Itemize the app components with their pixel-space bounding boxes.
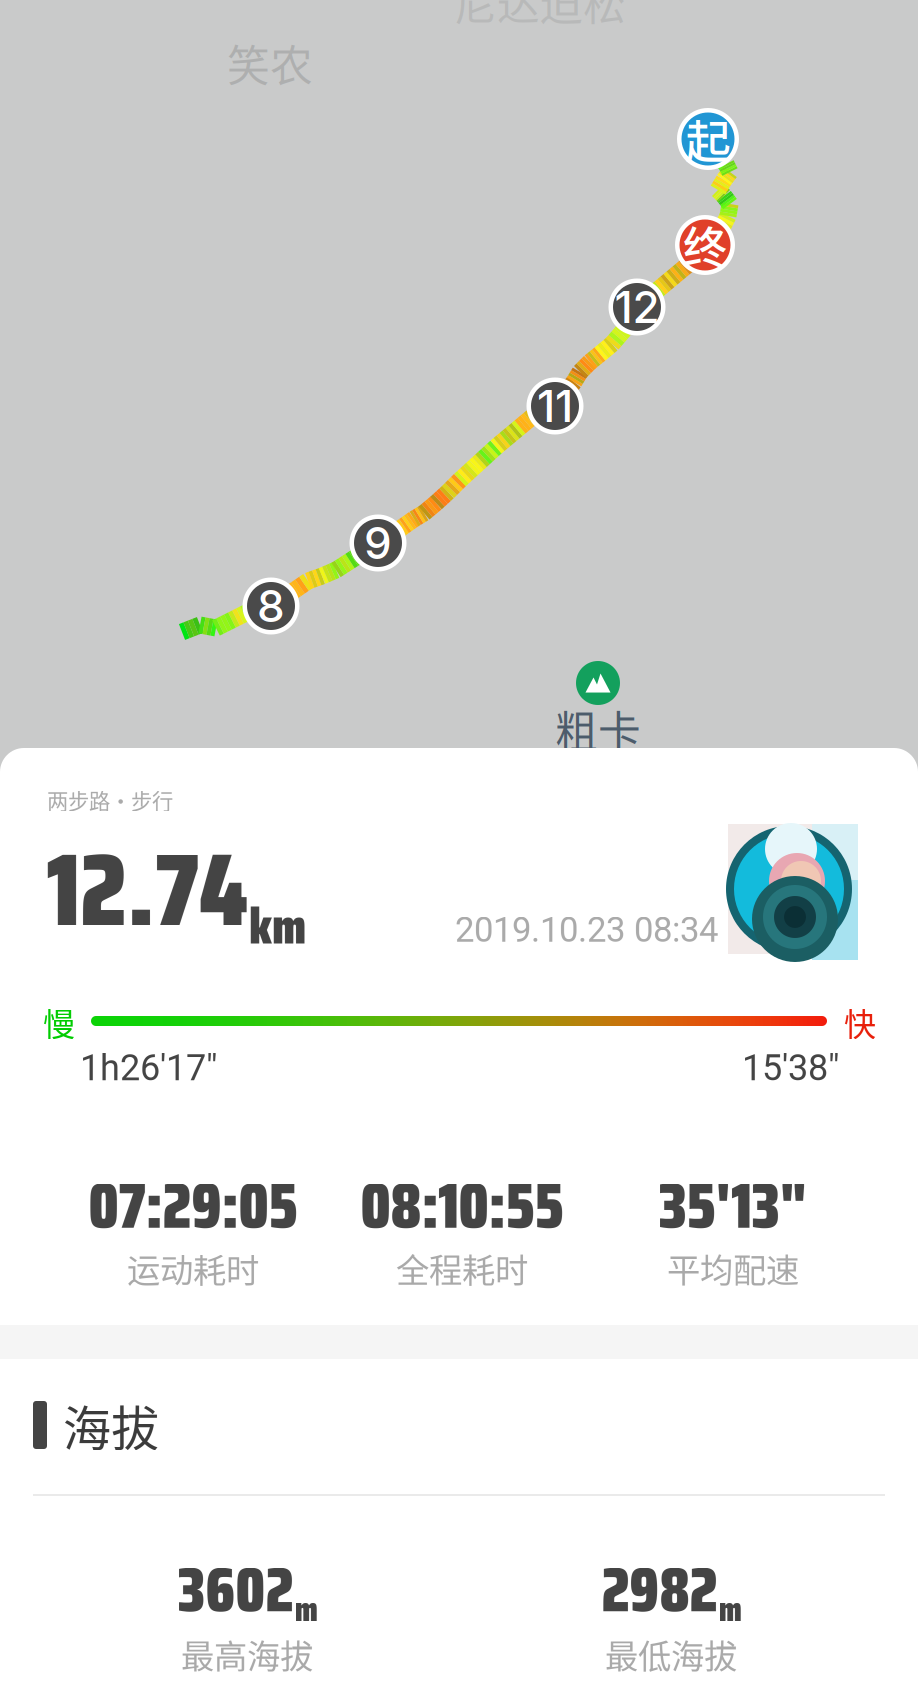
button[interactable]: 9 <box>349 514 406 571</box>
staticText: 最低海拔 <box>605 1630 737 1678</box>
button[interactable]: 11 <box>526 377 583 434</box>
staticText: 11 <box>537 379 573 433</box>
staticText: 12.74 <box>47 810 248 970</box>
staticText: 两步路·步行 <box>47 785 173 815</box>
staticText: 笑农 <box>227 32 313 94</box>
staticText: m <box>718 1582 741 1636</box>
staticText: 粗卡 <box>555 698 641 760</box>
staticText: km <box>249 886 306 966</box>
staticText: 尼达迫松 <box>454 0 626 33</box>
staticText: 07:29:05 <box>88 1157 297 1255</box>
staticText: 35'13" <box>658 1157 807 1255</box>
staticText: 8 <box>257 579 285 633</box>
staticText: 2019.10.23 08:34 <box>455 910 718 950</box>
staticText: 慢 <box>43 999 75 1045</box>
staticText: 08:10:55 <box>360 1157 563 1255</box>
button[interactable]: 起 <box>677 108 739 170</box>
button[interactable]: 8 <box>242 577 299 634</box>
staticText: 1h26'17" <box>80 1047 218 1089</box>
staticText: 快 <box>844 999 876 1045</box>
staticText: m <box>294 1582 317 1636</box>
button[interactable]: 终 <box>675 215 735 275</box>
staticText: 2982 <box>601 1542 717 1638</box>
staticText: 平均配速 <box>667 1244 799 1292</box>
staticText: 运动耗时 <box>127 1244 259 1292</box>
button[interactable]: 12 <box>608 278 665 335</box>
staticText: 终 <box>683 213 727 277</box>
staticText: 9 <box>364 516 392 570</box>
staticText: 15'38" <box>742 1047 840 1089</box>
staticText: 海拔 <box>63 1390 159 1460</box>
button[interactable]: 粗卡 <box>576 661 620 705</box>
staticText: 全程耗时 <box>396 1244 528 1292</box>
staticText: 起 <box>685 106 730 172</box>
staticText: 3602 <box>177 1542 293 1638</box>
staticText: 12 <box>614 280 659 334</box>
staticText: 最高海拔 <box>181 1630 313 1678</box>
